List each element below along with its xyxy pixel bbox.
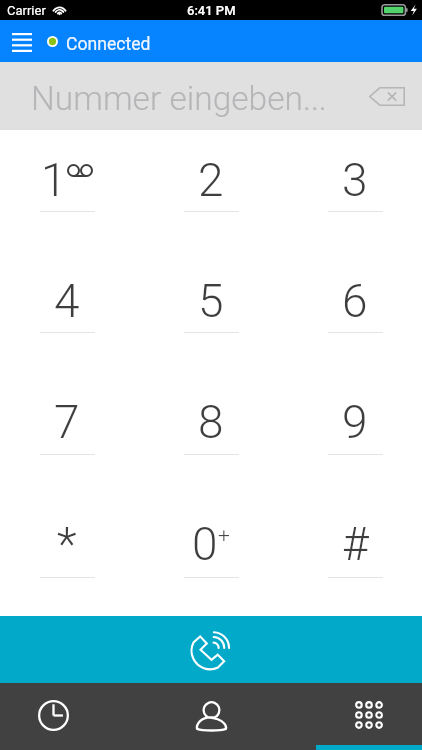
staticText: 7 [54,395,80,449]
button[interactable]: Backspace [351,62,422,130]
button[interactable]: Recents [0,683,106,750]
staticText: 5 [198,274,224,328]
staticText: + [218,523,230,548]
staticText: 9 [342,395,368,449]
staticText: 4 [54,274,80,328]
staticText: # [342,517,369,571]
button[interactable]: 5 [139,251,283,372]
button[interactable]: * [0,494,139,616]
button[interactable]: 3 [283,130,422,251]
staticText: 6 [342,274,368,328]
button[interactable]: 8 [139,372,283,494]
button[interactable]: Call [0,616,422,683]
staticText: 8 [198,395,224,449]
button[interactable]: # [283,494,422,616]
staticText: 3 [342,153,368,207]
staticText: 6:41 PM [187,3,236,18]
button[interactable]: 7 [0,372,139,494]
button[interactable]: 6 [283,251,422,372]
staticText: * [57,517,77,571]
staticText: Nummer eingeben... [31,79,327,118]
button[interactable]: 0 [139,494,283,616]
staticText: 1 [41,153,67,207]
button[interactable]: 4 [0,251,139,372]
staticText: Carrier [7,3,46,18]
button[interactable]: 9 [283,372,422,494]
button[interactable]: 1 [0,130,139,251]
button[interactable]: Keypad [316,683,422,750]
button[interactable]: Contacts [106,683,316,750]
staticText: 2 [198,153,224,207]
staticText: 0 [192,517,218,571]
button[interactable]: Menu [0,20,42,62]
button[interactable]: 2 [139,130,283,251]
staticText: Connected [66,34,151,55]
